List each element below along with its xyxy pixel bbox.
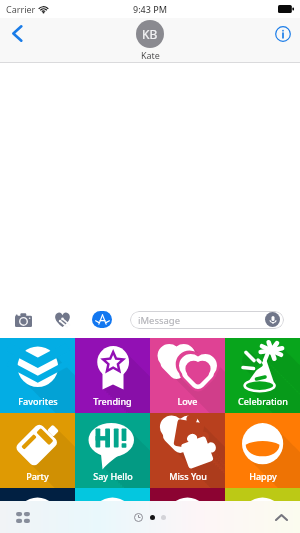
- staticText: Miss You: [169, 470, 207, 482]
- button[interactable]: Record audio: [265, 312, 280, 327]
- staticText: KB: [142, 26, 158, 42]
- button[interactable]: Expand: [268, 504, 294, 530]
- staticText: Carrier: [6, 3, 36, 15]
- button[interactable]: Camera: [7, 301, 39, 338]
- button[interactable]: Celebration: [225, 338, 300, 413]
- button[interactable]: App grid: [10, 504, 36, 530]
- staticText: Celebration: [238, 395, 288, 407]
- button[interactable]: Miss You: [150, 413, 225, 488]
- button[interactable]: [225, 488, 300, 533]
- staticText: iMessage: [138, 314, 181, 327]
- staticText: Kate: [141, 49, 160, 61]
- staticText: 9:43 PM: [133, 3, 167, 15]
- staticText: Party: [26, 470, 49, 482]
- button[interactable]: [150, 488, 225, 533]
- button[interactable]: [0, 488, 75, 533]
- staticText: Happy: [249, 470, 277, 482]
- button[interactable]: Party: [0, 413, 75, 488]
- button[interactable]: Details: [266, 18, 300, 50]
- button[interactable]: App Store: [86, 301, 118, 338]
- button[interactable]: iMessage: [130, 311, 284, 329]
- button[interactable]: Trending: [75, 338, 150, 413]
- staticText: Love: [177, 395, 198, 407]
- staticText: Favorites: [18, 395, 58, 407]
- button[interactable]: KB: [136, 18, 164, 61]
- button[interactable]: Digital Touch: [46, 301, 78, 338]
- button[interactable]: Happy: [225, 413, 300, 488]
- staticText: Say Hello: [93, 470, 133, 482]
- button[interactable]: Love: [150, 338, 225, 413]
- button[interactable]: Back: [0, 18, 34, 48]
- button[interactable]: [75, 488, 150, 533]
- button[interactable]: Favorites: [0, 338, 75, 413]
- staticText: Trending: [93, 395, 132, 407]
- button[interactable]: Say Hello: [75, 413, 150, 488]
